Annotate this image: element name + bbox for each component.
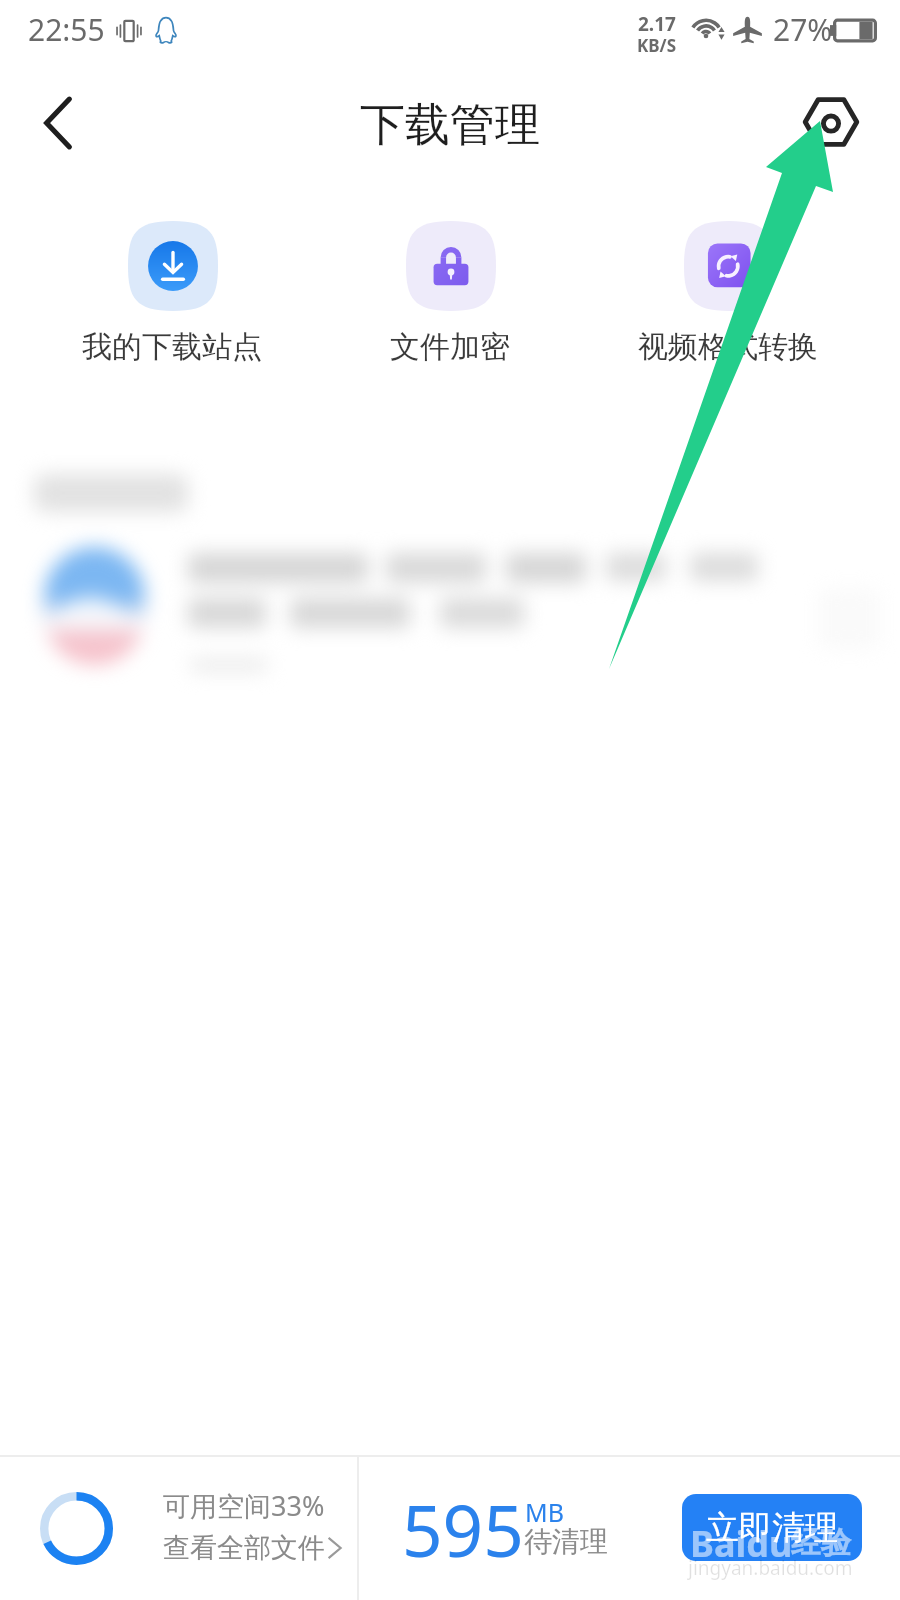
staticText: 下载管理 (360, 97, 540, 154)
staticText: 595 (402, 1481, 524, 1578)
staticText: 22:55 (28, 9, 105, 50)
staticText: Baidu (690, 1519, 793, 1568)
staticText: 27% (773, 9, 833, 50)
staticText: 查看全部文件 (163, 1531, 325, 1565)
staticText: 文件加密 (390, 328, 510, 366)
button[interactable] (376, 211, 526, 371)
staticText: 待清理 (524, 1524, 608, 1559)
staticText: jingyan.baidu.com (688, 1555, 853, 1581)
button[interactable] (98, 211, 248, 371)
staticText: 可用空间33% (163, 1487, 325, 1524)
button[interactable]: Settings (790, 81, 871, 162)
staticText: 视频格式转换 (638, 328, 818, 366)
staticText: KB/S (637, 34, 677, 57)
button[interactable]: Back (20, 85, 96, 161)
staticText: 立即清理 (706, 1507, 838, 1549)
staticText: 我的下载站点 (82, 328, 262, 366)
staticText: 2.17 (638, 11, 676, 37)
staticText: 经验 (791, 1524, 851, 1562)
button[interactable]: 立即清理 (682, 1494, 862, 1561)
staticText: MB (525, 1495, 564, 1529)
button[interactable] (654, 211, 804, 371)
button[interactable]: 可用空间33% (0, 1457, 357, 1600)
